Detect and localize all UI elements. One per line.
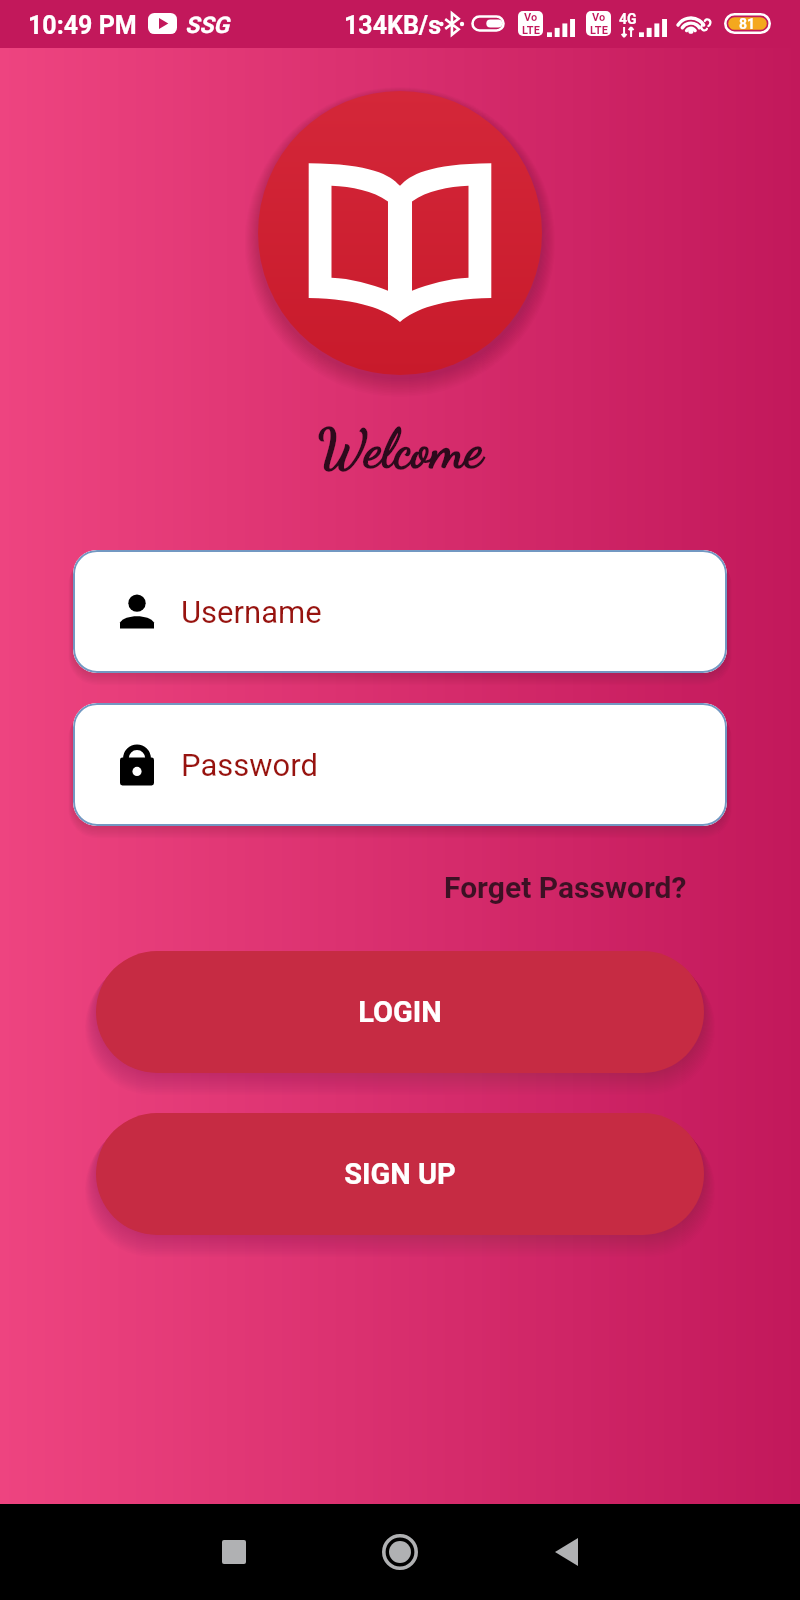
button[interactable]: Home — [372, 1524, 428, 1580]
staticText: 10:49 PM — [28, 11, 137, 40]
button[interactable]: Back — [538, 1524, 594, 1580]
staticText: LOGIN — [358, 995, 442, 1029]
staticText: 134KB/s — [344, 11, 442, 40]
staticText: Username — [181, 594, 322, 630]
staticText: Welcome — [318, 417, 483, 481]
staticText: 4G — [619, 11, 637, 27]
button[interactable]: Recents — [206, 1524, 262, 1580]
staticText: Vo — [524, 11, 538, 24]
button[interactable]: SIGN UP — [96, 1113, 704, 1235]
button[interactable]: LOGIN — [96, 951, 704, 1073]
button[interactable]: Forget Password? — [444, 870, 687, 905]
staticText: Vo — [592, 11, 606, 24]
staticText: LTE — [590, 24, 608, 36]
button[interactable]: Password — [73, 703, 727, 826]
button[interactable]: Username — [73, 550, 727, 673]
staticText: SIGN UP — [344, 1157, 456, 1191]
staticText: Password — [181, 747, 318, 783]
staticText: LTE — [522, 24, 540, 36]
staticText: SSG — [185, 12, 229, 39]
staticText: 81 — [739, 16, 756, 32]
